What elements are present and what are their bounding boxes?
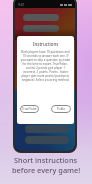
- staticText: Instructions: [33, 41, 59, 47]
- button[interactable]: [25, 136, 69, 144]
- button[interactable]: Public: [51, 105, 71, 113]
- staticText: True/False: [22, 107, 37, 111]
- staticText: before every game!: [12, 165, 81, 175]
- button[interactable]: [23, 14, 59, 21]
- button[interactable]: True/False: [20, 105, 39, 113]
- staticText: Public: [57, 107, 66, 111]
- button[interactable]: [25, 125, 69, 133]
- staticText: Both players have 10 questions and 10 se…: [20, 50, 71, 82]
- staticText: Short instructions: [14, 155, 78, 165]
- button[interactable]: [23, 25, 59, 32]
- staticText: 9:41: [18, 3, 25, 7]
